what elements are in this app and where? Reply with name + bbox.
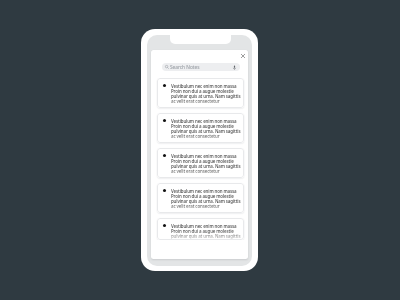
button[interactable]: Vestibulum nec enim non massa Proin non … <box>157 113 244 143</box>
button[interactable]: Search Notes <box>162 63 240 71</box>
staticText: Vestibulum nec enim non massa Proin non … <box>171 153 243 174</box>
button[interactable]: Close <box>238 51 247 60</box>
staticText: Vestibulum nec enim non massa Proin non … <box>171 83 243 104</box>
staticText: Search Notes <box>170 64 200 70</box>
staticText: Vestibulum nec enim non massa Proin non … <box>171 188 243 209</box>
button[interactable]: Vestibulum nec enim non massa Proin non … <box>157 148 244 178</box>
staticText: Vestibulum nec enim non massa Proin non … <box>171 223 243 240</box>
button[interactable]: Vestibulum nec enim non massa Proin non … <box>157 78 244 108</box>
button[interactable]: Vestibulum nec enim non massa Proin non … <box>157 218 244 240</box>
staticText: Vestibulum nec enim non massa Proin non … <box>171 118 243 139</box>
button[interactable]: Vestibulum nec enim non massa Proin non … <box>157 183 244 213</box>
